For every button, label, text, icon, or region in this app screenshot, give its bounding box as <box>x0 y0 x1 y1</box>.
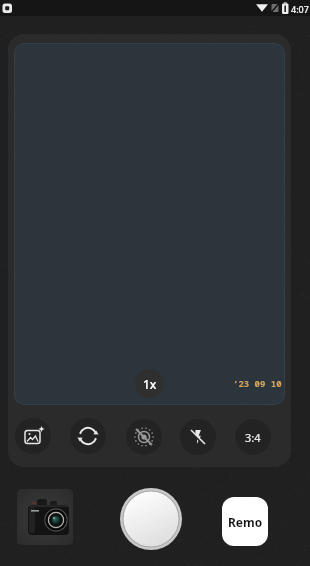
button[interactable]: 1x <box>135 369 164 398</box>
button[interactable] <box>70 418 106 454</box>
button[interactable]: 3:4 <box>235 419 271 455</box>
button[interactable]: Remo <box>222 497 268 546</box>
staticText: Remo <box>228 514 263 530</box>
button[interactable] <box>126 419 162 455</box>
button[interactable] <box>15 418 51 454</box>
button[interactable] <box>119 487 183 551</box>
button[interactable] <box>180 419 216 455</box>
staticText: 3:4 <box>245 430 261 445</box>
staticText: 4:07 <box>291 3 309 15</box>
staticText: ’23 09 10 <box>233 377 282 389</box>
staticText: 1x <box>143 376 157 392</box>
button[interactable] <box>17 489 73 545</box>
